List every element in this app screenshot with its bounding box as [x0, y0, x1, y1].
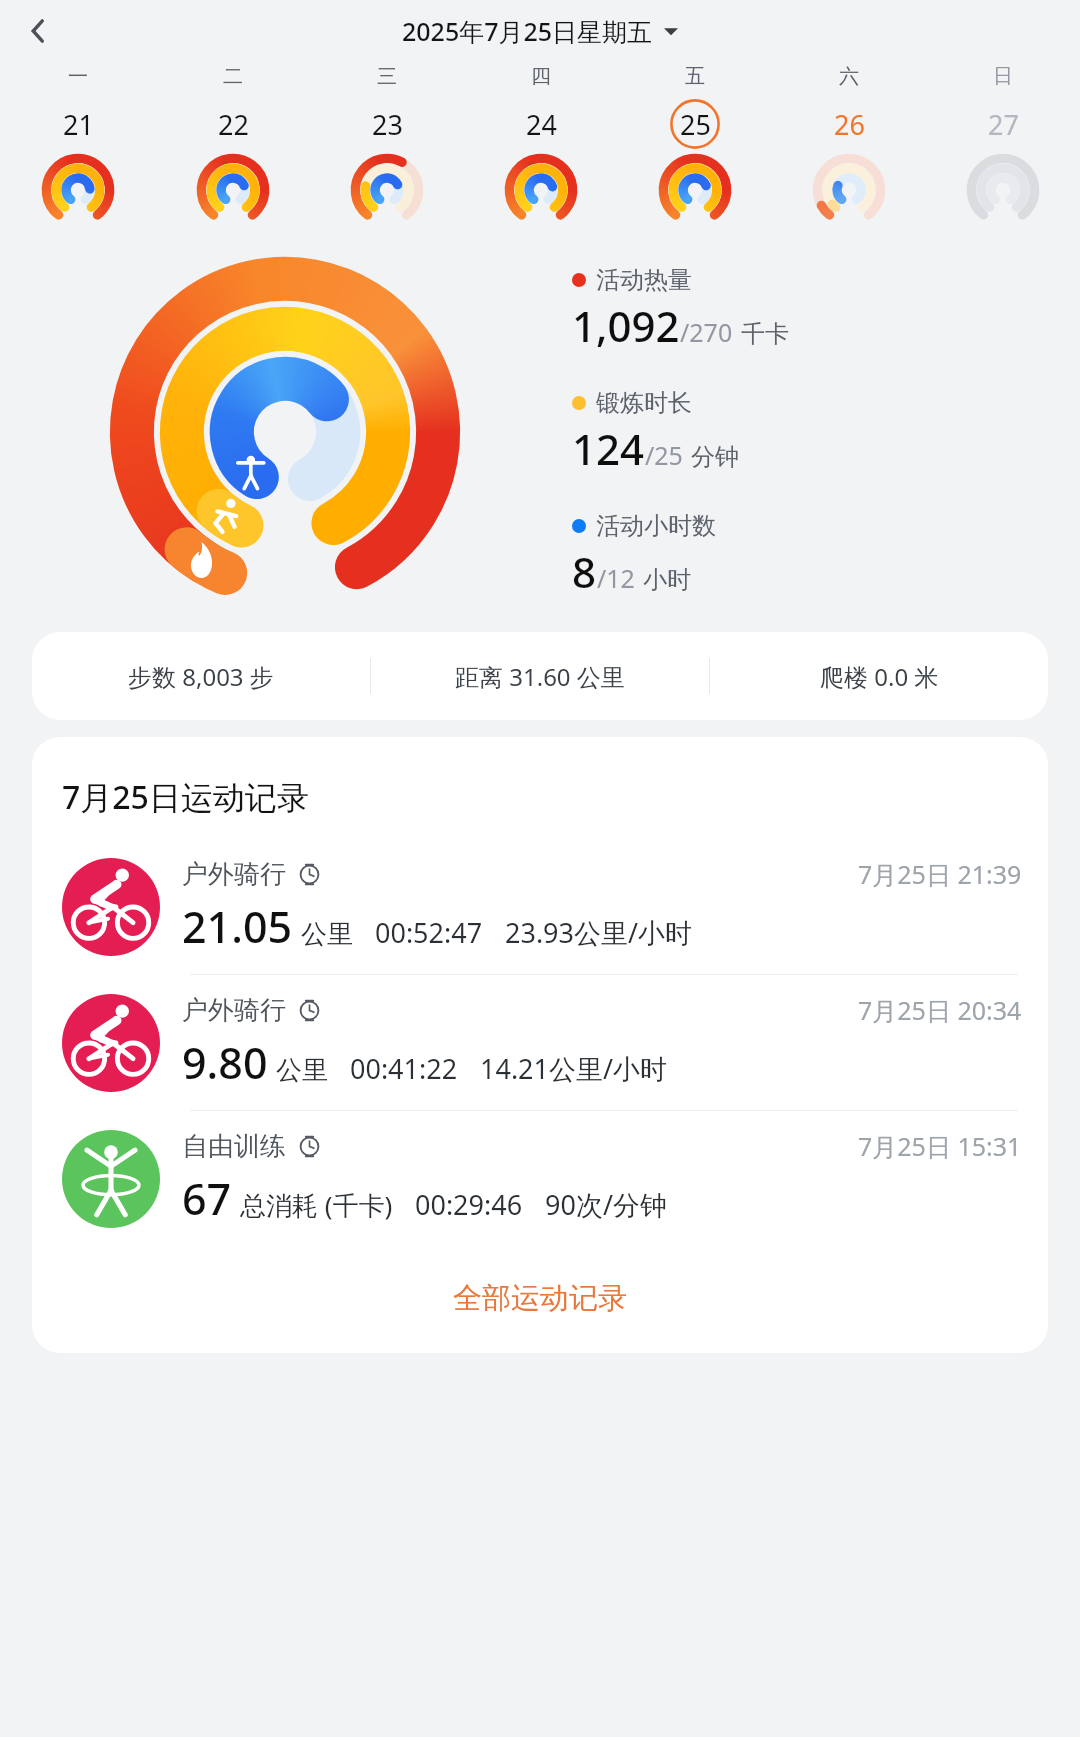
button[interactable]: 2025年7月25日星期五: [394, 9, 686, 53]
staticText: 23.93公里/小时: [505, 914, 693, 951]
staticText: 25: [680, 106, 711, 143]
staticText: 全部运动记录: [453, 1280, 627, 1317]
button[interactable]: 步数 8,003 步: [32, 632, 1048, 720]
staticText: 1,092: [572, 297, 680, 354]
staticText: 三: [377, 64, 397, 89]
staticText: 日: [993, 64, 1013, 89]
staticText: 自由训练: [182, 1130, 286, 1163]
button[interactable]: 四: [464, 62, 618, 232]
staticText: 户外骑行: [182, 858, 286, 891]
staticText: 六: [839, 64, 859, 89]
staticText: 锻炼时长: [596, 388, 692, 418]
staticText: 00:29:46: [415, 1186, 523, 1223]
staticText: 21.05: [182, 897, 293, 956]
staticText: 一: [68, 64, 88, 89]
staticText: 活动热量: [596, 265, 692, 295]
button[interactable]: 活动圆环: [109, 256, 461, 608]
button[interactable]: 自由训练: [32, 1111, 1048, 1246]
staticText: 小时: [643, 565, 691, 595]
staticText: 27: [988, 106, 1019, 143]
staticText: 00:41:22: [350, 1050, 458, 1087]
button[interactable]: 全部运动记录: [32, 1246, 1048, 1353]
staticText: 21: [63, 106, 94, 143]
staticText: 户外骑行: [182, 994, 286, 1027]
staticText: 24: [526, 106, 557, 143]
button[interactable]: 五: [618, 62, 772, 232]
button[interactable]: 户外骑行: [32, 975, 1048, 1110]
staticText: 7月25日运动记录: [62, 775, 309, 819]
staticText: 四: [531, 64, 551, 89]
staticText: 总消耗 (千卡): [240, 1187, 393, 1223]
staticText: /25: [645, 438, 683, 472]
button[interactable]: Back: [12, 5, 64, 57]
button[interactable]: 户外骑行: [32, 839, 1048, 974]
staticText: 二: [223, 64, 243, 89]
staticText: 26: [834, 106, 865, 143]
staticText: 距离 31.60 公里: [455, 660, 625, 693]
staticText: 90次/分钟: [545, 1186, 667, 1223]
staticText: 千卡: [741, 319, 789, 349]
button[interactable]: 一: [0, 62, 155, 232]
staticText: 7月25日 15:31: [858, 1129, 1022, 1163]
button[interactable]: 锻炼时长: [570, 386, 741, 479]
staticText: 活动小时数: [596, 511, 716, 541]
staticText: 124: [572, 420, 645, 477]
staticText: 公里: [301, 918, 353, 951]
staticText: 分钟: [691, 442, 739, 472]
staticText: 五: [685, 64, 705, 89]
staticText: 22: [218, 106, 249, 143]
staticText: 14.21公里/小时: [480, 1050, 668, 1087]
staticText: 2025年7月25日星期五: [402, 14, 653, 48]
staticText: 7月25日 20:34: [858, 993, 1022, 1027]
button[interactable]: 二: [155, 62, 310, 232]
staticText: 公里: [276, 1054, 328, 1087]
staticText: 7月25日 21:39: [858, 857, 1022, 891]
button[interactable]: 三: [310, 62, 464, 232]
button[interactable]: 活动热量: [570, 263, 791, 356]
staticText: 爬楼 0.0 米: [820, 660, 939, 693]
button[interactable]: 日: [926, 62, 1080, 232]
staticText: /12: [597, 561, 635, 595]
button[interactable]: 六: [772, 62, 926, 232]
staticText: 23: [372, 106, 403, 143]
button[interactable]: 活动小时数: [570, 509, 718, 602]
staticText: 9.80: [182, 1033, 268, 1092]
staticText: 67: [182, 1169, 232, 1228]
staticText: 8: [572, 543, 597, 600]
staticText: 00:52:47: [375, 914, 483, 951]
staticText: 步数 8,003 步: [128, 660, 274, 693]
staticText: /270: [680, 315, 733, 349]
